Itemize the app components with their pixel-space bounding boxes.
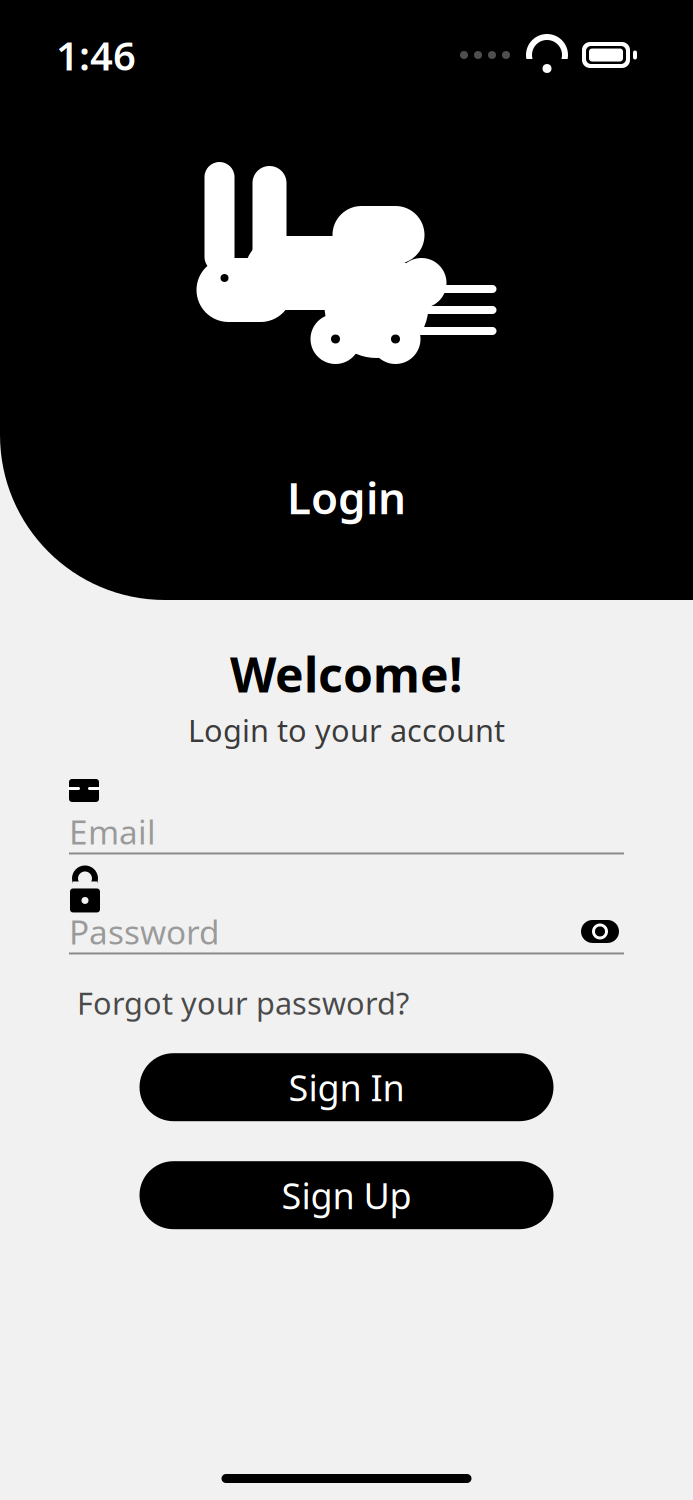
staticText: Login to your account — [188, 710, 505, 750]
staticText: Sign In — [288, 1063, 404, 1111]
staticText: 1:46 — [56, 28, 136, 81]
staticText: Login — [287, 468, 406, 526]
staticText: Sign Up — [281, 1171, 411, 1219]
button[interactable]: Show password — [576, 914, 624, 948]
staticText: Password — [69, 909, 220, 954]
staticText: Welcome! — [230, 642, 463, 706]
button[interactable]: Forgot your password? — [77, 976, 409, 1029]
staticText: Email — [69, 809, 156, 854]
button[interactable]: Sign Up — [139, 1161, 553, 1229]
button[interactable]: Sign In — [139, 1053, 553, 1121]
staticText: Forgot your password? — [77, 982, 409, 1023]
